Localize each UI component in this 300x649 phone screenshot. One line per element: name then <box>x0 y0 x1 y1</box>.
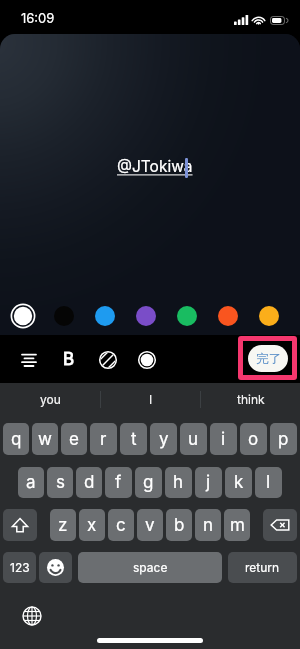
button[interactable]: d <box>76 467 102 498</box>
staticText: w <box>38 429 52 450</box>
button[interactable]: I <box>101 385 200 413</box>
staticText: b <box>174 515 185 536</box>
staticText: o <box>248 429 259 450</box>
button[interactable]: Emoji <box>39 552 72 583</box>
button[interactable]: l <box>255 467 282 498</box>
staticText: m <box>230 515 245 536</box>
staticText: r <box>100 429 107 450</box>
staticText: c <box>116 515 126 536</box>
staticText: a <box>26 472 36 493</box>
button[interactable]: y <box>150 423 177 455</box>
button[interactable]: k <box>225 467 252 498</box>
staticText: s <box>56 472 65 493</box>
staticText: v <box>145 515 155 536</box>
staticText: B <box>63 349 75 370</box>
staticText: think <box>237 392 265 407</box>
button[interactable]: q <box>3 423 29 455</box>
button[interactable]: s <box>47 467 73 498</box>
button[interactable]: B <box>55 346 82 373</box>
staticText: 16:09 <box>21 10 55 26</box>
button[interactable]: e <box>61 423 87 455</box>
staticText: g <box>143 472 154 493</box>
button[interactable]: Text colour <box>134 347 160 373</box>
button[interactable]: t <box>120 423 147 455</box>
button[interactable]: Text highlight <box>95 347 121 373</box>
staticText: z <box>58 515 68 536</box>
staticText: space <box>133 560 168 575</box>
button[interactable]: Backspace <box>263 509 297 541</box>
button[interactable]: think <box>201 385 300 413</box>
staticText: @JTokiwa <box>117 157 193 176</box>
button[interactable]: p <box>270 423 297 455</box>
button[interactable]: n <box>195 509 221 541</box>
staticText: l <box>266 472 271 493</box>
button[interactable]: Colour <box>177 306 197 326</box>
staticText: u <box>188 429 199 450</box>
staticText: h <box>173 472 184 493</box>
staticText: 完了 <box>256 351 281 367</box>
button[interactable]: Colour <box>136 306 156 326</box>
button[interactable]: j <box>195 467 222 498</box>
button[interactable]: a <box>18 467 44 498</box>
button[interactable]: return <box>228 552 297 583</box>
button[interactable]: h <box>165 467 192 498</box>
staticText: q <box>11 429 22 450</box>
button[interactable]: Colour <box>95 306 115 326</box>
staticText: i <box>221 429 226 450</box>
staticText: I <box>149 392 153 407</box>
button[interactable]: x <box>79 509 105 541</box>
staticText: n <box>203 515 214 536</box>
staticText: d <box>84 472 95 493</box>
staticText: 123 <box>10 560 30 575</box>
button[interactable]: v <box>137 509 163 541</box>
staticText: y <box>159 429 169 450</box>
staticText: p <box>278 429 289 450</box>
button[interactable]: g <box>135 467 162 498</box>
button[interactable]: r <box>90 423 117 455</box>
staticText: e <box>69 429 79 450</box>
button[interactable]: 完了 <box>248 345 288 372</box>
button[interactable]: i <box>210 423 237 455</box>
button[interactable]: you <box>0 385 100 413</box>
button[interactable]: z <box>50 509 76 541</box>
staticText: t <box>131 429 137 450</box>
button[interactable]: o <box>240 423 267 455</box>
button[interactable]: White colour <box>10 303 36 329</box>
button[interactable]: Colour <box>54 306 74 326</box>
button[interactable]: Shift <box>3 509 37 541</box>
button[interactable]: u <box>180 423 207 455</box>
button[interactable]: m <box>224 509 250 541</box>
staticText: x <box>87 515 97 536</box>
button[interactable]: b <box>166 509 192 541</box>
staticText: j <box>206 472 211 493</box>
button[interactable]: Colour <box>218 306 238 326</box>
staticText: return <box>245 560 280 575</box>
button[interactable]: Align text <box>16 347 42 373</box>
staticText: k <box>234 472 244 493</box>
staticText: you <box>40 392 61 407</box>
button[interactable]: c <box>108 509 134 541</box>
button[interactable]: Change keyboard <box>22 606 42 626</box>
button[interactable]: w <box>32 423 58 455</box>
button[interactable]: Colour <box>259 306 279 326</box>
button[interactable]: space <box>78 552 222 583</box>
staticText: f <box>115 472 122 493</box>
button[interactable]: f <box>105 467 132 498</box>
button[interactable]: 123 <box>3 552 36 583</box>
